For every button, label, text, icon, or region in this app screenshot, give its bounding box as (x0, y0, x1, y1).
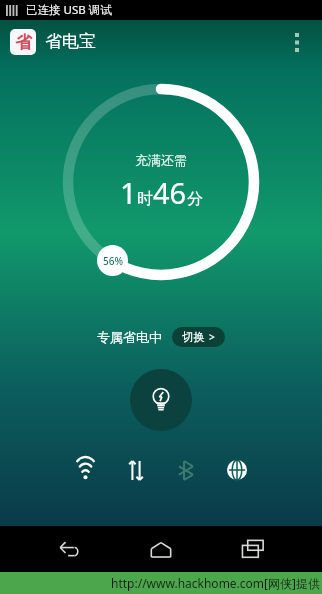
staticText: 46 (153, 173, 187, 212)
button[interactable]: More options (282, 27, 312, 57)
staticText: 专属省电中 (97, 329, 162, 345)
staticText: 切换 (182, 330, 205, 344)
staticText: 1 (120, 173, 137, 212)
staticText: 分 (187, 189, 203, 209)
button[interactable]: Recents (230, 526, 276, 572)
staticText: 56% (103, 254, 123, 268)
staticText: > (209, 330, 215, 344)
button[interactable]: 切换 (172, 327, 225, 347)
staticText: 充满还需 (135, 152, 187, 168)
button[interactable]: Power saving (130, 369, 192, 431)
button[interactable]: Back (46, 526, 92, 572)
staticText: 省 (15, 32, 32, 53)
button[interactable]: Wi-Fi (70, 455, 100, 485)
button[interactable]: Browser (222, 455, 252, 485)
button[interactable]: Mobile data (121, 455, 151, 485)
button[interactable]: Home (138, 526, 184, 572)
button[interactable]: Bluetooth (171, 455, 201, 485)
staticText: 省电宝 (45, 31, 96, 52)
staticText: http://www.hackhome.com[网侠]提供 (111, 575, 320, 591)
staticText: 时 (137, 189, 153, 209)
staticText: 已连接 USB 调试 (26, 2, 112, 18)
